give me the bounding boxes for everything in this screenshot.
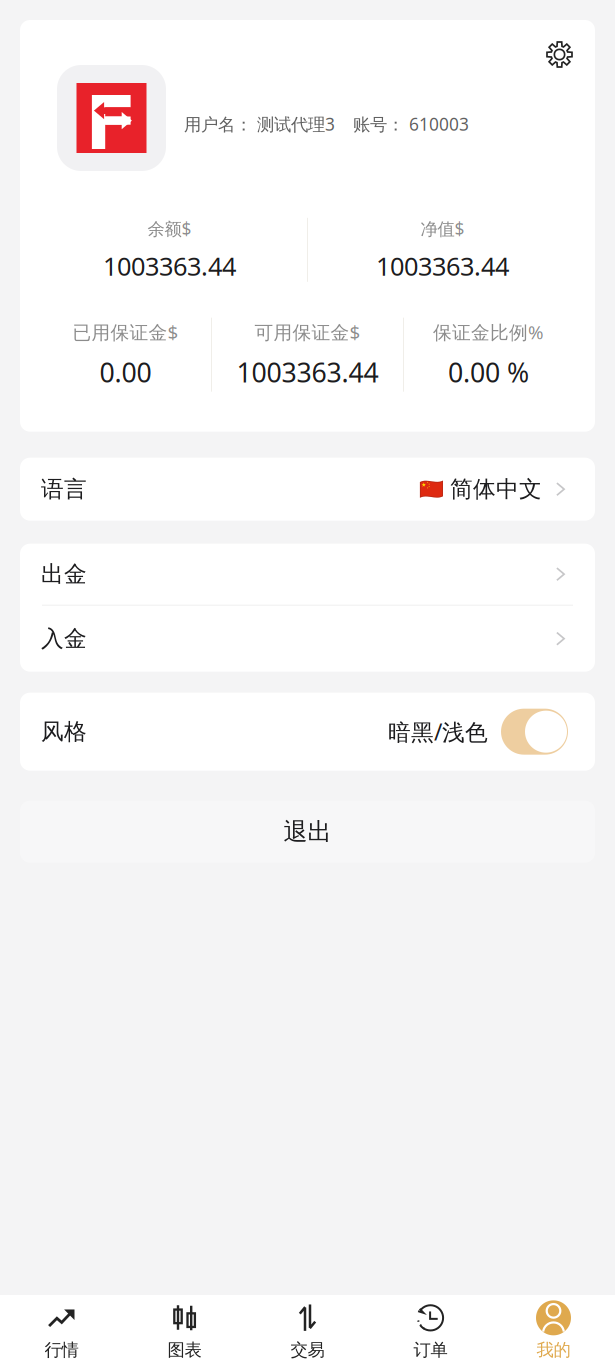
staticText: 🇨🇳 (419, 478, 444, 501)
button[interactable]: 出金 (20, 544, 595, 605)
button[interactable]: Settings (546, 41, 573, 68)
button[interactable]: 入金 (20, 606, 595, 672)
button[interactable]: 订单 (369, 1295, 492, 1368)
staticText: 0.00 % (448, 354, 529, 390)
staticText: 1003363.44 (103, 249, 236, 283)
staticText: 行情 (44, 1339, 78, 1361)
staticText: 账号： 610003 (353, 112, 469, 135)
button[interactable]: 图表 (123, 1295, 246, 1368)
button[interactable]: 退出 (20, 801, 595, 863)
staticText: 保证金比例% (433, 320, 544, 344)
button[interactable]: 语言 (20, 458, 595, 521)
button[interactable]: 交易 (246, 1295, 369, 1368)
button[interactable]: 风格 (20, 693, 595, 771)
staticText: 风格 (41, 718, 87, 745)
staticText: 交易 (290, 1339, 324, 1361)
button[interactable]: 我的 (492, 1295, 615, 1368)
staticText: 余额$ (147, 217, 191, 240)
button[interactable]: 行情 (0, 1295, 123, 1368)
staticText: 图表 (167, 1339, 201, 1361)
staticText: 出金 (41, 560, 87, 588)
staticText: 可用保证金$ (254, 320, 360, 344)
staticText: 净值$ (420, 217, 464, 240)
staticText: 退出 (283, 817, 331, 846)
staticText: 暗黑/浅色 (388, 717, 488, 747)
staticText: 用户名： 测试代理3 (184, 112, 335, 135)
staticText: 简体中文 (450, 475, 542, 503)
staticText: 语言 (41, 475, 87, 503)
staticText: 1003363.44 (236, 354, 378, 390)
staticText: 1003363.44 (376, 249, 509, 283)
staticText: 入金 (41, 625, 87, 652)
staticText: 订单 (413, 1339, 447, 1361)
staticText: 我的 (536, 1339, 570, 1361)
staticText: 已用保证金$ (72, 320, 178, 344)
staticText: 0.00 (99, 354, 151, 390)
